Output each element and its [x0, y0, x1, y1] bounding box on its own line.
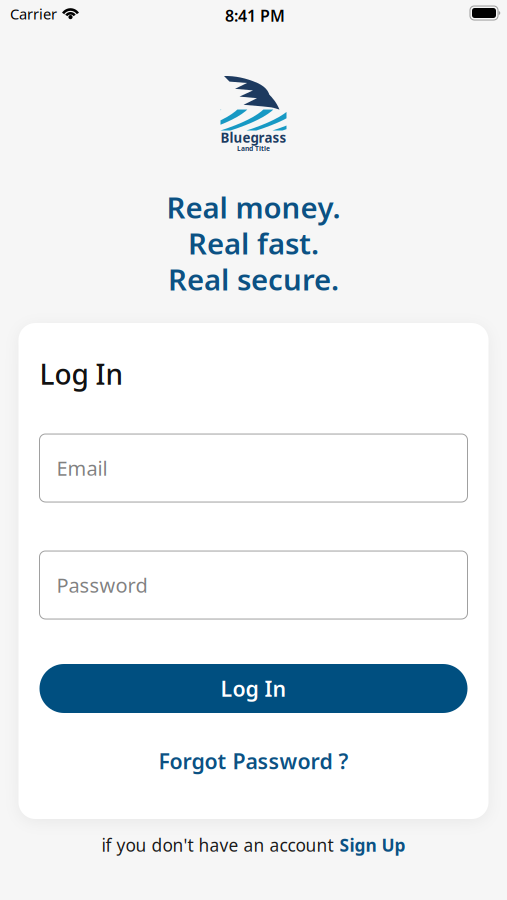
button[interactable]: Password: [39, 551, 467, 619]
button[interactable]: Log In: [39, 664, 467, 713]
staticText: Real secure.: [168, 259, 339, 298]
staticText: 8:41 PM: [225, 5, 285, 26]
staticText: Bluegrass: [220, 129, 286, 146]
staticText: Log In: [39, 355, 123, 393]
staticText: if you don't have an account: [101, 833, 333, 856]
staticText: Email: [56, 455, 107, 481]
staticText: Real money.: [166, 187, 340, 226]
staticText: Password: [56, 572, 147, 598]
staticText: Log In: [220, 674, 286, 703]
staticText: Real fast.: [188, 223, 319, 262]
button[interactable]: Forgot Password ?: [146, 747, 360, 775]
button[interactable]: Email: [39, 434, 467, 502]
staticText: Land Title: [237, 144, 270, 153]
staticText: Sign Up: [339, 833, 405, 856]
button[interactable]: Sign Up: [339, 833, 405, 856]
staticText: Carrier: [10, 4, 57, 23]
staticText: Forgot Password ?: [158, 747, 348, 775]
